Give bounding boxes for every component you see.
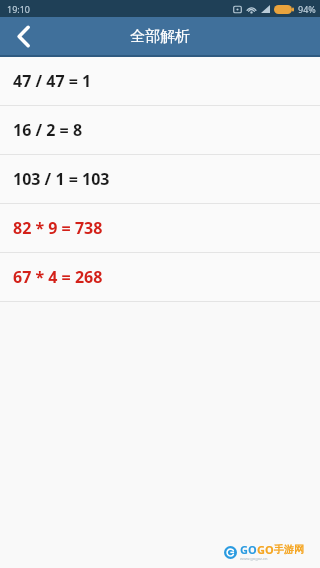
staticText: 19:10 bbox=[7, 3, 31, 15]
button[interactable]: 47 / 47 = 1 bbox=[0, 57, 320, 105]
staticText: 47 / 47 = 1 bbox=[13, 70, 92, 92]
button[interactable]: 103 / 1 = 103 bbox=[0, 155, 320, 203]
staticText: GO bbox=[257, 542, 274, 557]
button[interactable]: 82 * 9 = 738 bbox=[0, 204, 320, 252]
staticText: 94% bbox=[298, 3, 316, 15]
button[interactable]: Back bbox=[0, 17, 46, 55]
staticText: 103 / 1 = 103 bbox=[13, 168, 110, 190]
staticText: 全部解析 bbox=[130, 27, 190, 46]
staticText: 67 * 4 = 268 bbox=[13, 266, 103, 288]
staticText: GO bbox=[240, 542, 257, 557]
staticText: 16 / 2 = 8 bbox=[13, 119, 83, 141]
staticText: www.gogoz.cn bbox=[240, 556, 268, 561]
staticText: 手游网 bbox=[274, 543, 304, 556]
button[interactable]: 67 * 4 = 268 bbox=[0, 253, 320, 301]
button[interactable]: 16 / 2 = 8 bbox=[0, 106, 320, 154]
staticText: 82 * 9 = 738 bbox=[13, 217, 103, 239]
